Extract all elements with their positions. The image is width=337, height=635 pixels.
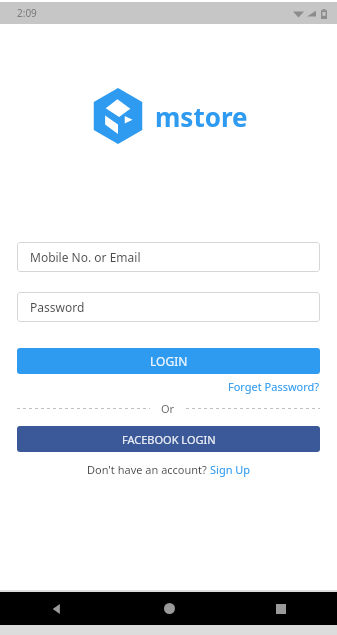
- staticText: Mobile No. or Email: [30, 249, 141, 265]
- staticText: Forget Password?: [228, 379, 320, 394]
- button[interactable]: Back: [0, 592, 113, 625]
- button[interactable]: Sign Up: [210, 462, 251, 477]
- staticText: Password: [30, 299, 85, 315]
- staticText: Or: [161, 401, 175, 416]
- button[interactable]: Recent apps: [225, 592, 337, 625]
- button[interactable]: Forget Password?: [228, 379, 320, 394]
- staticText: mstore: [155, 99, 248, 134]
- staticText: Sign Up: [210, 462, 251, 477]
- button[interactable]: Password: [17, 292, 320, 322]
- button[interactable]: FACEBOOK LOGIN: [17, 426, 320, 452]
- button[interactable]: Mobile No. or Email: [17, 242, 320, 272]
- staticText: LOGIN: [150, 353, 188, 369]
- staticText: Don't have an account?: [87, 462, 210, 477]
- button[interactable]: LOGIN: [17, 348, 320, 374]
- button[interactable]: Home: [113, 592, 225, 625]
- staticText: 2:09: [17, 6, 37, 20]
- staticText: FACEBOOK LOGIN: [122, 432, 216, 447]
